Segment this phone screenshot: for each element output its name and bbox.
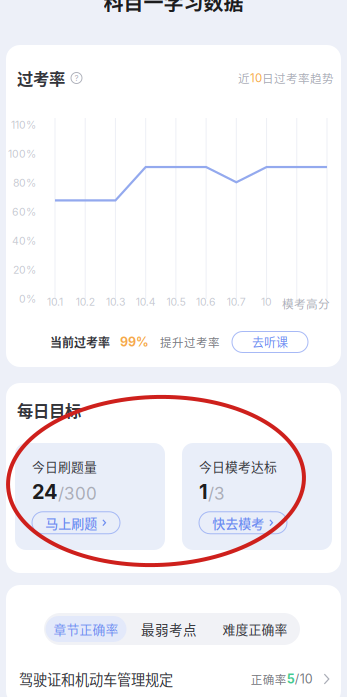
- staticText: 10.4: [136, 296, 156, 308]
- button[interactable]: 去听课: [232, 331, 308, 352]
- staticText: 60%: [12, 206, 36, 218]
- staticText: 科目一学习数据: [103, 0, 243, 16]
- staticText: 去听课: [252, 333, 288, 351]
- staticText: 驾驶证和机动车管理规定: [19, 669, 173, 689]
- staticText: 10: [261, 296, 272, 308]
- staticText: 过考率: [17, 66, 65, 90]
- staticText: 1: [199, 479, 208, 504]
- button[interactable]: 章节正确率: [45, 616, 126, 642]
- staticText: 马上刷题: [45, 513, 97, 532]
- staticText: 提升过考率: [160, 334, 220, 350]
- staticText: 10.1: [47, 296, 63, 308]
- staticText: 99%: [120, 334, 149, 349]
- staticText: 当前过考率: [50, 333, 110, 351]
- staticText: 章节正确率: [53, 620, 118, 638]
- button[interactable]: 难度正确率: [211, 616, 298, 642]
- staticText: /3: [208, 483, 225, 504]
- staticText: 10.5: [166, 296, 185, 308]
- staticText: 20%: [13, 264, 36, 276]
- staticText: 今日模考达标: [199, 457, 277, 475]
- staticText: 正确率: [251, 671, 287, 687]
- staticText: 0%: [19, 293, 36, 305]
- staticText: 10.2: [76, 296, 95, 308]
- staticText: 10.6: [196, 296, 216, 308]
- staticText: 10.3: [106, 296, 125, 308]
- staticText: 10: [250, 71, 262, 85]
- staticText: 近: [238, 70, 250, 86]
- staticText: 模考高分: [282, 295, 330, 312]
- staticText: 110%: [11, 119, 36, 131]
- staticText: 40%: [12, 235, 36, 247]
- staticText: /300: [58, 483, 97, 504]
- staticText: 80%: [13, 177, 36, 189]
- staticText: 100%: [8, 148, 36, 160]
- button[interactable]: 最弱考点: [126, 616, 211, 642]
- button[interactable]: 驾驶证和机动车管理规定: [0, 0, 330, 690]
- staticText: 10.7: [227, 296, 246, 308]
- button[interactable]: 快去模考: [199, 512, 287, 534]
- staticText: ?: [74, 73, 78, 83]
- staticText: 日过考率趋势: [262, 70, 334, 86]
- button[interactable]: 马上刷题: [32, 512, 120, 534]
- staticText: 难度正确率: [222, 620, 287, 638]
- staticText: 5: [287, 671, 295, 686]
- staticText: 24: [32, 479, 58, 504]
- staticText: 快去模考: [212, 513, 264, 532]
- staticText: /10: [295, 671, 313, 686]
- staticText: 最弱考点: [141, 619, 197, 639]
- staticText: 每日目标: [17, 398, 81, 422]
- staticText: 今日刷题量: [32, 457, 97, 475]
